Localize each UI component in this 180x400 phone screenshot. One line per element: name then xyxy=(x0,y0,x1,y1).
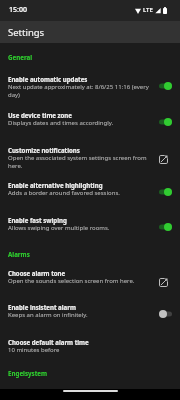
staticText: 15:00 xyxy=(9,5,27,15)
button[interactable]: Enable alternative highlighting xyxy=(0,174,180,209)
staticText: Enable fast swiping xyxy=(8,216,67,224)
button[interactable]: Enable automatic updates xyxy=(0,68,180,103)
staticText: Allows swiping over multiple rooms. xyxy=(8,224,110,232)
staticText: Next update approximately at: 8/6/25 11:… xyxy=(8,83,154,99)
button[interactable]: Choose alarm tone xyxy=(0,262,180,297)
staticText: Engelsystem xyxy=(8,369,48,377)
staticText: General xyxy=(8,53,33,61)
button[interactable]: Enable insistent alarm xyxy=(0,296,180,331)
staticText: 10 minutes before xyxy=(8,346,60,354)
button[interactable]: Toggle setting xyxy=(158,220,172,234)
staticText: Alarms xyxy=(8,250,30,258)
button[interactable]: Choose default alarm time xyxy=(0,331,180,366)
staticText: Choose default alarm time xyxy=(8,338,89,346)
staticText: Displays dates and times accordingly. xyxy=(8,119,114,127)
button[interactable]: Open external settings screen xyxy=(156,275,170,289)
button[interactable]: Toggle setting xyxy=(158,307,172,321)
button[interactable]: Toggle setting xyxy=(158,115,172,129)
staticText: Open the associated system settings scre… xyxy=(8,154,154,170)
staticText: Open the sounds selection screen from he… xyxy=(8,277,135,285)
staticText: Choose alarm tone xyxy=(8,269,66,277)
staticText: Settings xyxy=(8,26,45,39)
button[interactable]: Open external settings screen xyxy=(156,152,170,166)
button[interactable]: Toggle setting xyxy=(158,79,172,93)
staticText: Customize notifications xyxy=(8,146,80,154)
staticText: Enable insistent alarm xyxy=(8,303,76,311)
staticText: LTE xyxy=(143,6,153,14)
staticText: Adds a border around favored sessions. xyxy=(8,189,120,197)
button[interactable]: Toggle setting xyxy=(158,185,172,199)
button[interactable]: Use device time zone xyxy=(0,104,180,139)
staticText: Enable automatic updates xyxy=(8,75,88,83)
staticText: Keeps an alarm on infinitely. xyxy=(8,311,88,319)
staticText: Enable alternative highlighting xyxy=(8,181,103,189)
button[interactable]: Enable fast swiping xyxy=(0,209,180,244)
button[interactable]: Customize notifications xyxy=(0,139,180,174)
staticText: Use device time zone xyxy=(8,111,72,119)
